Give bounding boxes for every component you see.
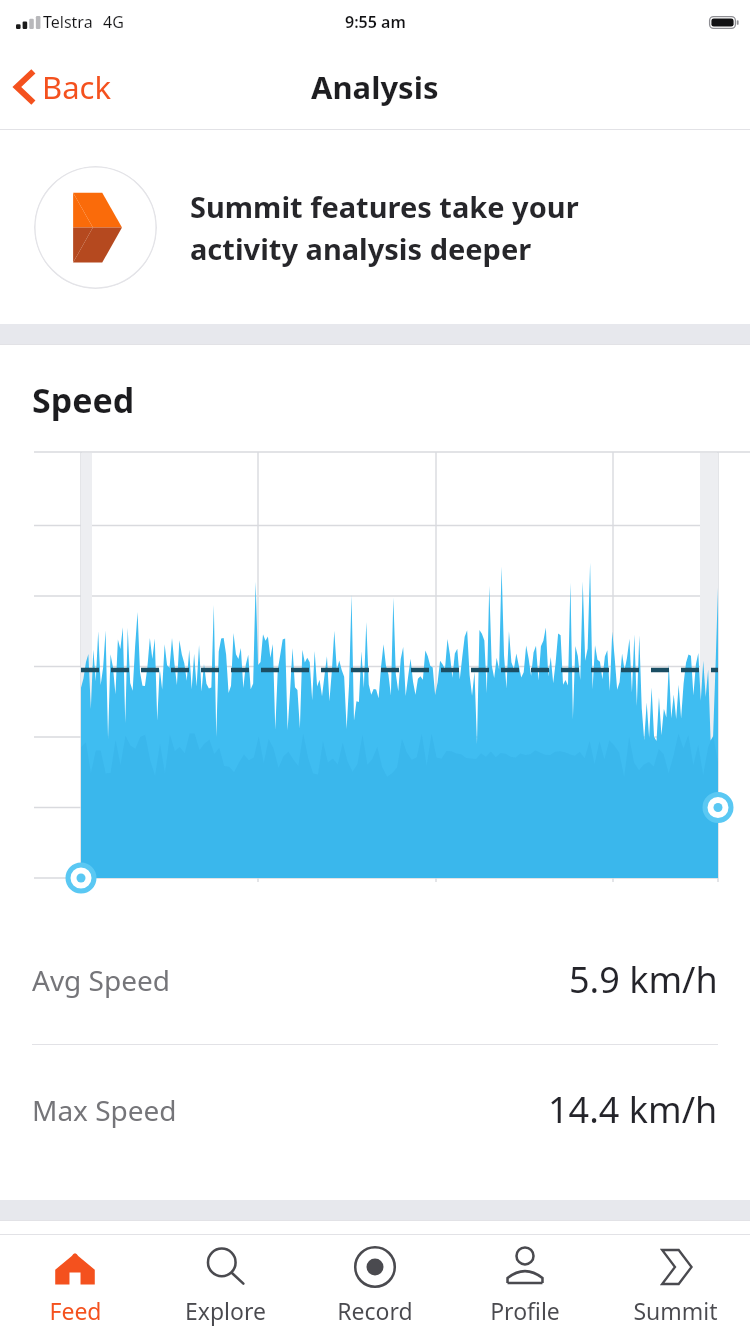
other: Explore — [202, 1244, 248, 1290]
staticText: Speed — [32, 377, 135, 423]
staticText: Profile — [490, 1295, 560, 1326]
staticText: Feed — [49, 1295, 102, 1326]
staticText: Avg Speed — [32, 961, 171, 999]
staticText: Max Speed — [32, 1091, 177, 1129]
staticText: Summit features take your — [190, 187, 579, 226]
button[interactable]: Max Speed — [0, 1045, 750, 1174]
other: Profile — [502, 1244, 548, 1290]
button[interactable]: Feed — [0, 1235, 150, 1334]
staticText: Summit — [633, 1295, 718, 1326]
button[interactable]: Explore — [150, 1235, 300, 1334]
staticText: Telstra — [43, 11, 93, 33]
staticText: Explore — [185, 1295, 266, 1326]
button[interactable]: Avg Speed — [0, 915, 750, 1044]
button[interactable]: Heart Rate Zones — [0, 1221, 750, 1281]
staticText: 14.4 km/h — [548, 1085, 718, 1134]
button[interactable]: Record — [300, 1235, 450, 1334]
other: Feed — [52, 1244, 98, 1290]
staticText: SUMMIT — [619, 1248, 718, 1281]
button[interactable]: Profile — [450, 1235, 600, 1334]
other: Record — [352, 1244, 398, 1290]
other: Summit — [652, 1244, 698, 1290]
staticText: 9:55 am — [345, 11, 406, 33]
button[interactable]: Back — [0, 58, 125, 116]
staticText: Record — [337, 1295, 413, 1326]
staticText: Analysis — [311, 66, 439, 108]
staticText: Back — [42, 66, 111, 108]
staticText: 4G — [103, 11, 124, 33]
staticText: 5.9 km/h — [569, 955, 718, 1004]
staticText: activity analysis deeper — [190, 229, 532, 268]
button[interactable]: Summit — [600, 1235, 750, 1334]
button[interactable]: Summit features take your — [0, 130, 750, 324]
staticText: Heart Rate Zones — [72, 1235, 365, 1281]
